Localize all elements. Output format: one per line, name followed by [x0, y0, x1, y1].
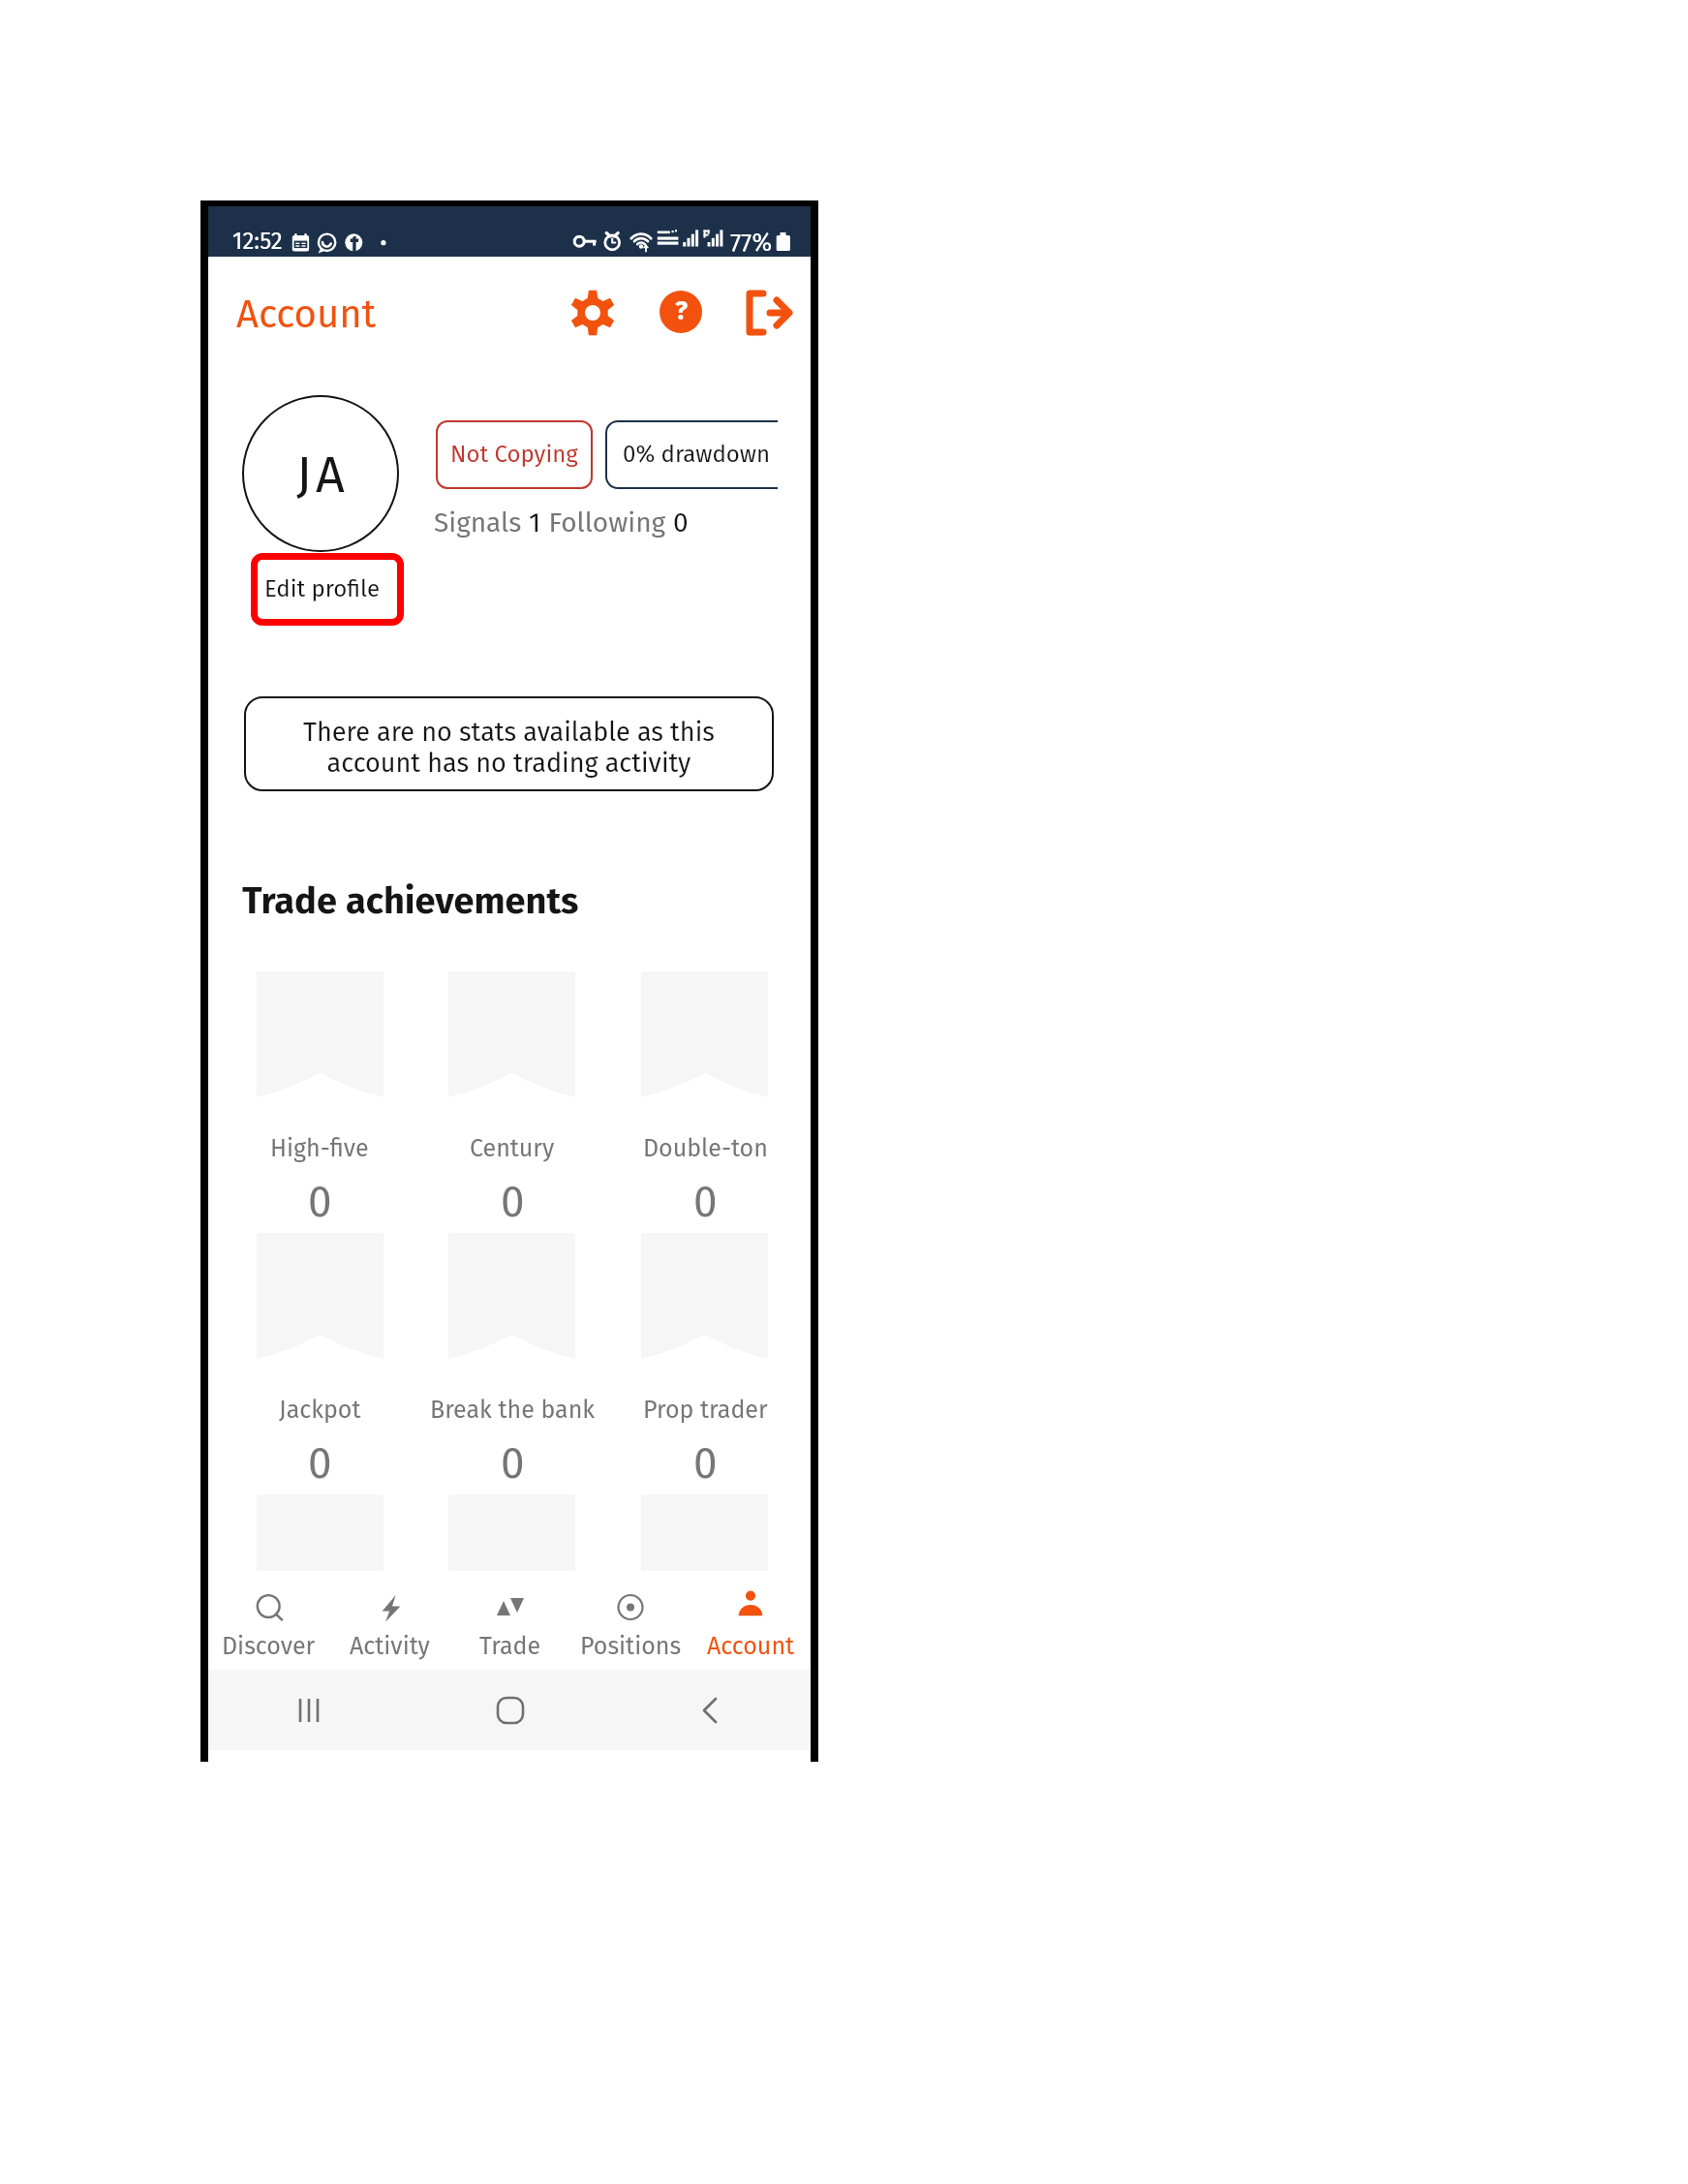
- staticText: 0: [693, 1177, 718, 1227]
- button[interactable]: Edit profile: [251, 553, 404, 626]
- staticText: 0% drawdown: [623, 441, 771, 469]
- button[interactable]: Activity: [329, 1571, 450, 1670]
- button[interactable]: Home: [410, 1670, 610, 1750]
- staticText: Trade: [479, 1632, 541, 1661]
- staticText: 0: [308, 1177, 332, 1227]
- staticText: 1: [529, 507, 541, 539]
- button[interactable]: Help: [652, 283, 710, 341]
- staticText: Following: [541, 507, 673, 539]
- staticText: Break the bank: [430, 1396, 596, 1425]
- button[interactable]: Discover: [208, 1571, 329, 1670]
- button[interactable]: 0% drawdown: [605, 420, 778, 489]
- button[interactable]: Back: [610, 1670, 811, 1750]
- staticText: A: [316, 445, 345, 505]
- staticText: ?: [675, 295, 688, 326]
- staticText: Edit profile: [264, 575, 381, 603]
- staticText: 0: [501, 1177, 525, 1227]
- staticText: 0: [673, 507, 689, 539]
- button[interactable]: Trade: [450, 1571, 570, 1670]
- button[interactable]: Settings: [564, 284, 622, 342]
- staticText: Double-ton: [643, 1134, 768, 1163]
- button[interactable]: Not Copying: [436, 420, 593, 489]
- button[interactable]: Positions: [570, 1571, 691, 1670]
- staticText: Century: [470, 1134, 555, 1163]
- staticText: Positions: [580, 1632, 682, 1661]
- staticText: 0: [693, 1438, 718, 1489]
- staticText: 0: [308, 1438, 332, 1489]
- staticText: 0: [501, 1438, 525, 1489]
- staticText: Activity: [350, 1632, 430, 1661]
- staticText: Prop trader: [643, 1396, 768, 1425]
- button[interactable]: Recent apps: [208, 1670, 410, 1750]
- button[interactable]: Profile avatar JA: [242, 395, 399, 552]
- staticText: J: [296, 445, 312, 505]
- staticText: There are no stats available as this acc…: [303, 717, 715, 779]
- staticText: Signals: [434, 507, 529, 539]
- staticText: Account: [236, 292, 377, 338]
- staticText: Jackpot: [279, 1396, 361, 1425]
- button[interactable]: Achievement badge: [641, 1494, 768, 1620]
- button[interactable]: Achievement badge: [257, 1494, 384, 1620]
- staticText: High-five: [270, 1134, 369, 1163]
- staticText: Not Copying: [450, 441, 578, 469]
- staticText: Account: [707, 1632, 795, 1661]
- staticText: Trade achievements: [242, 878, 579, 923]
- staticText: 77%: [730, 229, 773, 258]
- button[interactable]: Log out: [743, 288, 797, 338]
- staticText: Discover: [222, 1632, 316, 1661]
- button[interactable]: Achievement badge: [448, 1494, 575, 1620]
- button[interactable]: Account: [691, 1571, 811, 1670]
- staticText: 12:52: [232, 228, 283, 256]
